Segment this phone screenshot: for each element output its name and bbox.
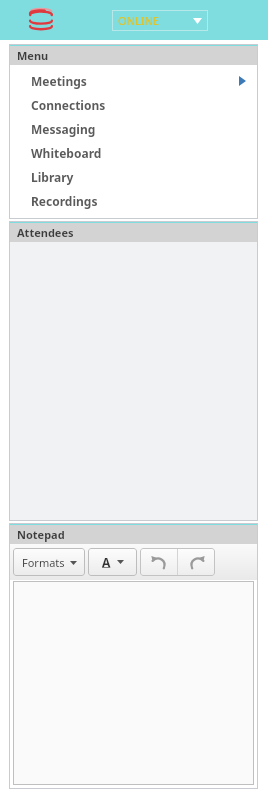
staticText: Messaging xyxy=(31,121,96,137)
button[interactable]: Meetings xyxy=(9,69,258,93)
button[interactable]: Redo xyxy=(178,548,215,576)
button[interactable] xyxy=(13,581,254,785)
button[interactable]: Messaging xyxy=(9,117,258,141)
button[interactable]: Formats xyxy=(13,548,85,576)
button[interactable]: Library xyxy=(9,165,258,189)
staticText: A xyxy=(102,554,111,570)
staticText: Whiteboard xyxy=(31,145,102,161)
button[interactable]: ONLINE xyxy=(112,10,208,31)
staticText: Formats xyxy=(22,555,65,570)
staticText: Library xyxy=(31,169,74,185)
button[interactable]: Whiteboard xyxy=(9,141,258,165)
staticText: Meetings xyxy=(31,73,87,89)
staticText: Menu xyxy=(17,48,49,63)
staticText: Connections xyxy=(31,97,106,113)
other: Logo xyxy=(28,6,54,34)
staticText: Attendees xyxy=(17,225,74,240)
button[interactable]: Recordings xyxy=(9,189,258,213)
staticText: ONLINE xyxy=(118,13,159,28)
staticText: Notepad xyxy=(17,527,65,542)
button[interactable]: Undo xyxy=(140,548,177,576)
staticText: Recordings xyxy=(31,193,98,209)
button[interactable]: A xyxy=(88,548,137,576)
button[interactable]: Connections xyxy=(9,93,258,117)
